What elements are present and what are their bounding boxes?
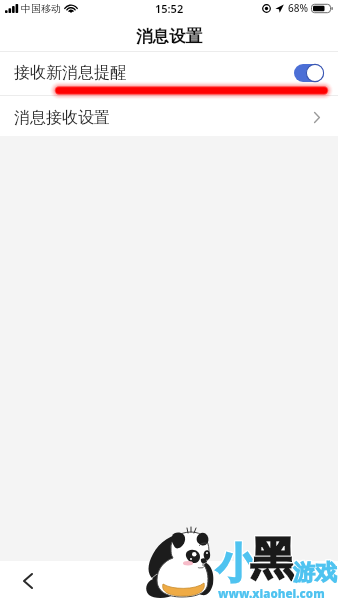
staticText: 小	[215, 540, 256, 592]
staticText: 黑	[250, 531, 295, 588]
staticText: 游戏	[293, 559, 337, 587]
staticText: 消息设置	[136, 26, 202, 47]
staticText: 黑	[249, 531, 294, 588]
staticText: 游戏	[292, 560, 336, 588]
staticText: www.xiaohei.com	[217, 586, 324, 600]
staticText: 游戏	[294, 560, 338, 588]
staticText: 游戏	[292, 559, 336, 587]
staticText: 游戏	[294, 558, 338, 586]
staticText: www.xiaohei.com	[217, 585, 324, 600]
staticText: www.xiaohei.com	[218, 585, 325, 600]
staticText: www.xiaohei.com	[218, 587, 325, 600]
staticText: 小	[215, 539, 256, 591]
staticText: 黑	[250, 532, 295, 589]
staticText: 小	[216, 540, 257, 592]
staticText: 15:52	[155, 1, 184, 16]
staticText: www.xiaohei.com	[219, 585, 326, 600]
staticText: 接收新消息提醒	[14, 63, 126, 83]
staticText: www.xiaohei.com	[219, 586, 326, 600]
staticText: 中国移动	[21, 2, 61, 15]
staticText: 小	[217, 540, 258, 592]
staticText: 黑	[251, 530, 296, 587]
button[interactable]: 接收新消息提醒	[0, 52, 338, 95]
staticText: 游戏	[293, 560, 337, 588]
staticText: 小	[217, 539, 258, 591]
staticText: 小	[216, 539, 257, 591]
staticText: 黑	[251, 531, 296, 588]
staticText: 游戏	[293, 558, 337, 586]
staticText: 黑	[249, 530, 294, 587]
staticText: 小	[215, 538, 256, 590]
staticText: 黑	[249, 532, 294, 589]
staticText: 小	[217, 538, 258, 590]
staticText: 消息接收设置	[14, 108, 110, 128]
staticText: 小	[216, 538, 257, 590]
staticText: 黑	[250, 530, 295, 587]
staticText: 68%	[288, 1, 308, 15]
staticText: 游戏	[294, 559, 338, 587]
staticText: 黑	[251, 532, 296, 589]
staticText: www.xiaohei.com	[218, 586, 325, 600]
staticText: www.xiaohei.com	[217, 587, 324, 600]
staticText: 游戏	[292, 558, 336, 586]
button[interactable]: 消息接收设置	[0, 96, 338, 136]
button[interactable]: Toggle receive new message alerts	[294, 64, 324, 82]
button[interactable]: Back	[14, 567, 42, 595]
staticText: www.xiaohei.com	[219, 587, 326, 600]
